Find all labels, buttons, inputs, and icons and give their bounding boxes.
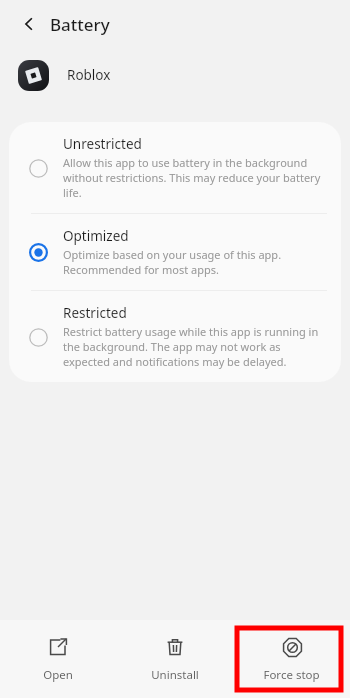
staticText: Force stop	[263, 667, 320, 683]
button[interactable]: Back	[14, 9, 44, 39]
staticText: Restricted	[63, 304, 127, 322]
button[interactable]: Unrestricted	[9, 122, 341, 213]
button[interactable]: Open	[0, 620, 116, 698]
staticText: Open	[43, 667, 73, 683]
staticText: Uninstall	[151, 667, 199, 683]
button[interactable]: Force stop	[233, 620, 350, 698]
button[interactable]: Optimized	[9, 214, 341, 290]
button[interactable]: Restricted	[9, 291, 341, 382]
staticText: Unrestricted	[63, 135, 142, 153]
staticText: Restrict battery usage while this app is…	[63, 324, 327, 369]
staticText: Allow this app to use battery in the bac…	[63, 155, 327, 200]
button[interactable]: Roblox	[0, 48, 350, 102]
staticText: Roblox	[67, 66, 111, 84]
staticText: Optimized	[63, 227, 129, 245]
staticText: Optimize based on your usage of this app…	[63, 247, 327, 277]
staticText: Battery	[50, 13, 110, 36]
button[interactable]: Uninstall	[116, 620, 233, 698]
